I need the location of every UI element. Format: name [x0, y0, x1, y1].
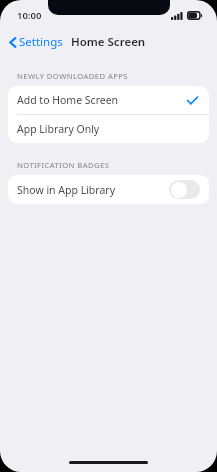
button[interactable]: Settings: [0, 29, 71, 55]
staticText: Settings: [19, 34, 63, 50]
staticText: Home Screen: [71, 34, 146, 50]
button[interactable]: Show in App Library: [8, 175, 209, 204]
button[interactable]: App Library Only: [8, 115, 209, 143]
staticText: NEWLY DOWNLOADED APPS: [17, 71, 128, 81]
staticText: 10:00: [17, 9, 42, 22]
button[interactable]: Show in App Library, off: [169, 180, 200, 199]
staticText: Show in App Library: [17, 183, 169, 197]
staticText: App Library Only: [17, 122, 100, 136]
staticText: Add to Home Screen: [17, 93, 187, 107]
button[interactable]: Add to Home Screen: [8, 86, 209, 114]
staticText: NOTIFICATION BADGES: [17, 160, 110, 170]
